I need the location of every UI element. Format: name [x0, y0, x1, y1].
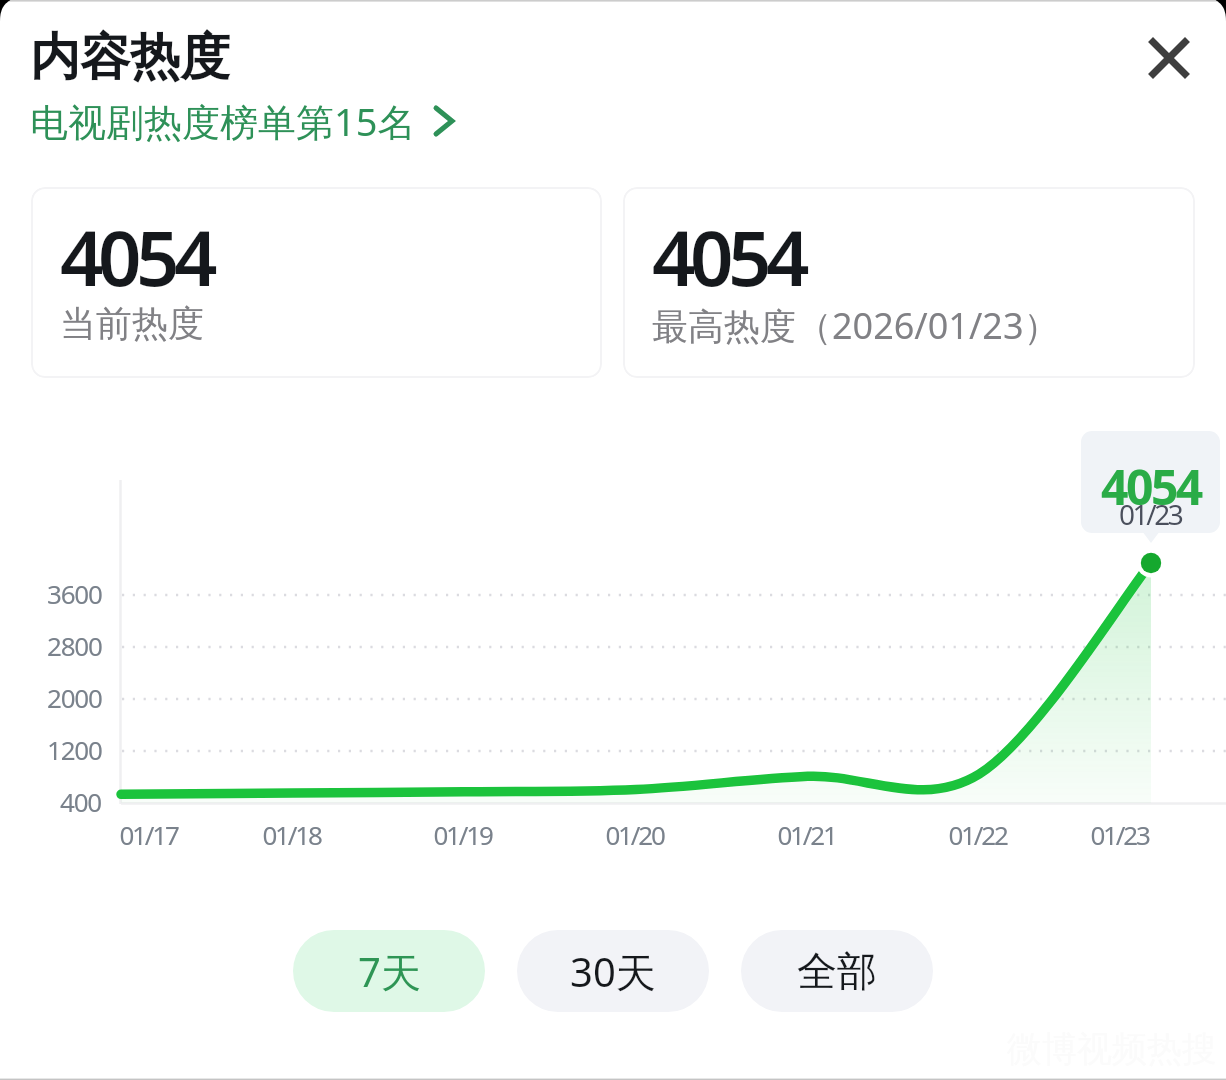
button[interactable]: Close	[1132, 21, 1206, 95]
staticText: 内容热度	[30, 26, 230, 89]
staticText: 01/23	[1119, 495, 1182, 533]
button[interactable]: 30天	[517, 930, 709, 1012]
staticText: 1200	[47, 732, 102, 767]
staticText: 最高热度（2026/01/23）	[652, 301, 1060, 350]
staticText: 全部	[797, 946, 877, 996]
button[interactable]: 全部	[741, 930, 933, 1012]
staticText: 4054	[60, 205, 212, 309]
staticText: 7天	[358, 944, 421, 999]
button[interactable]: 4054	[31, 187, 602, 378]
staticText: 2000	[47, 680, 102, 715]
staticText: 01/23	[1090, 817, 1149, 852]
staticText: 30天	[570, 944, 656, 999]
staticText: 2800	[47, 628, 102, 663]
staticText: 01/20	[605, 817, 664, 852]
staticText: 4054	[1101, 454, 1201, 519]
staticText: 3600	[47, 576, 102, 611]
staticText: 01/17	[119, 817, 178, 852]
staticText: 01/21	[777, 817, 836, 852]
button[interactable]: 4054	[623, 187, 1195, 378]
staticText: 01/22	[948, 817, 1007, 852]
staticText: 400	[60, 784, 102, 819]
button[interactable]: 7天	[293, 930, 485, 1012]
button[interactable]: 电视剧热度榜单第15名	[30, 95, 454, 147]
staticText: 01/18	[262, 817, 321, 852]
staticText: 当前热度	[60, 301, 204, 346]
staticText: 4054	[652, 205, 804, 309]
staticText: 电视剧热度榜单第15名	[30, 95, 416, 147]
staticText: 01/19	[433, 817, 492, 852]
